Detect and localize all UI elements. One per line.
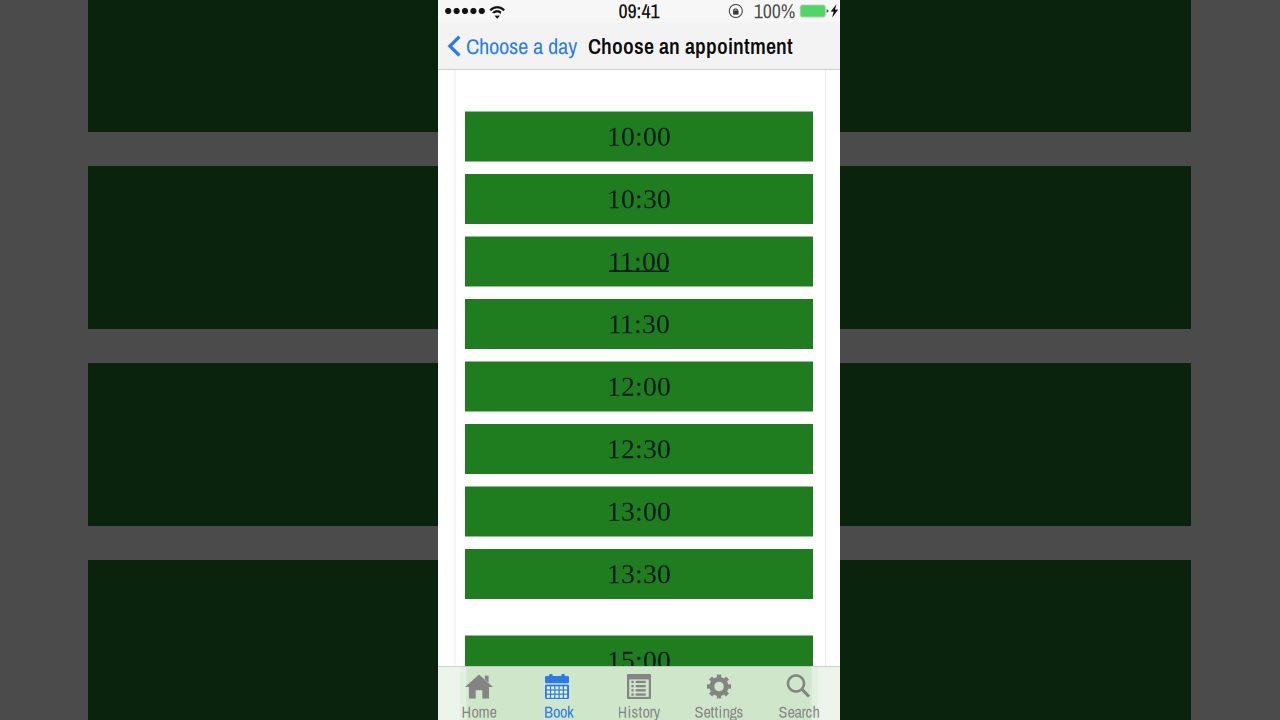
button[interactable]: 15:00 — [465, 635, 813, 685]
staticText: 09:41 — [618, 0, 659, 24]
staticText: History — [617, 701, 660, 720]
staticText: 10:00 — [607, 121, 671, 152]
button[interactable]: Settings — [679, 666, 759, 720]
staticText: Home — [461, 701, 496, 720]
button[interactable]: Home — [439, 666, 519, 720]
staticText: 13:00 — [607, 496, 671, 527]
staticText: Settings — [694, 701, 743, 720]
staticText: 12:00 — [607, 371, 671, 402]
button[interactable]: Search — [759, 666, 839, 720]
staticText: 13:30 — [607, 559, 671, 589]
staticText: 10:30 — [607, 184, 671, 214]
staticText: 11:00 — [608, 246, 670, 277]
staticText: Choose a day — [466, 31, 577, 61]
button[interactable]: 12:00 — [465, 361, 813, 411]
staticText: 12:30 — [607, 434, 671, 464]
staticText: Choose an appointment — [588, 31, 793, 61]
button[interactable]: 11:00 — [465, 236, 813, 286]
button[interactable]: 13:30 — [465, 549, 813, 599]
button[interactable]: Back to Choose a day — [438, 22, 588, 70]
staticText: 11:30 — [608, 309, 670, 339]
button[interactable]: 11:30 — [465, 299, 813, 349]
staticText: 15:00 — [607, 645, 671, 676]
button[interactable]: 12:30 — [465, 424, 813, 474]
button[interactable]: 10:00 — [465, 111, 813, 161]
button[interactable]: 10:30 — [465, 174, 813, 224]
staticText: Search — [778, 701, 819, 720]
button[interactable]: 13:00 — [465, 486, 813, 536]
staticText: 100% — [754, 0, 796, 24]
staticText: Book — [544, 701, 574, 720]
button[interactable]: History — [599, 666, 679, 720]
button[interactable]: Book — [519, 666, 599, 720]
